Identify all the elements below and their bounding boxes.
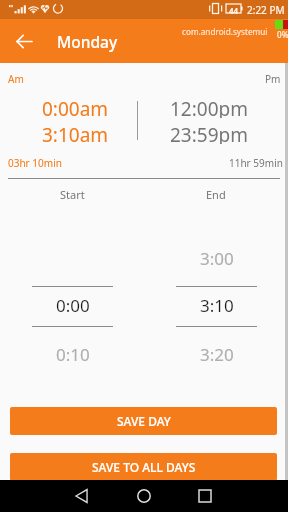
staticText: Monday: [57, 31, 118, 52]
staticText: 0%: [277, 29, 288, 40]
staticText: 0:10: [56, 343, 90, 366]
staticText: 3:10am: [42, 122, 109, 144]
staticText: 2:22 PM: [247, 3, 285, 17]
staticText: Start: [60, 187, 85, 202]
staticText: 0:00: [56, 294, 90, 317]
staticText: 0:00am: [42, 96, 109, 118]
staticText: Am: [8, 72, 24, 86]
button[interactable]: Recents: [191, 482, 219, 510]
staticText: 23:59pm: [170, 122, 249, 144]
staticText: 11hr 59min: [229, 156, 283, 170]
staticText: SAVE DAY: [117, 413, 171, 429]
staticText: 3:10: [200, 294, 234, 317]
staticText: 3:00: [200, 247, 234, 270]
button[interactable]: Home: [130, 482, 158, 510]
staticText: 12:00pm: [170, 96, 249, 118]
staticText: 03hr 10min: [8, 156, 62, 170]
staticText: com.android.systemui: [182, 26, 268, 37]
button[interactable]: Back: [8, 25, 40, 57]
staticText: SAVE TO ALL DAYS: [92, 459, 196, 475]
button[interactable]: SAVE DAY: [10, 407, 277, 435]
staticText: Pm: [265, 72, 281, 86]
staticText: 44: [229, 5, 239, 16]
staticText: End: [206, 187, 226, 202]
button[interactable]: SAVE TO ALL DAYS: [10, 453, 277, 481]
button[interactable]: Back: [68, 482, 96, 510]
staticText: 3:20: [200, 343, 234, 366]
